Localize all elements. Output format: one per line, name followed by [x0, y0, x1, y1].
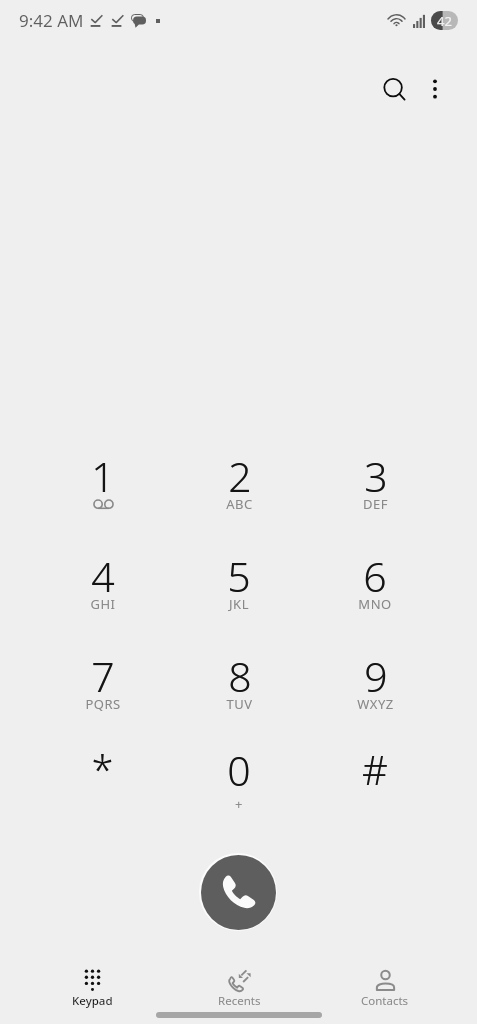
staticText: 4: [91, 548, 115, 595]
staticText: 2: [228, 448, 252, 495]
button[interactable]: More options: [411, 65, 459, 113]
staticText: 7: [91, 648, 115, 695]
staticText: 7: [91, 648, 115, 695]
button[interactable]: 0 plus: [171, 748, 307, 848]
staticText: 2: [228, 448, 252, 495]
button[interactable]: 8 TUV: [171, 648, 307, 748]
staticText: ABC: [226, 495, 253, 513]
staticText: +: [235, 795, 243, 813]
staticText: 5: [227, 548, 251, 595]
staticText: 42: [437, 12, 452, 30]
staticText: JKL: [229, 595, 249, 613]
button[interactable]: star: [34, 748, 171, 848]
staticText: *: [91, 742, 114, 789]
button[interactable]: 2 ABC: [171, 448, 307, 548]
button[interactable]: 5 JKL: [171, 548, 307, 648]
staticText: 0: [227, 742, 251, 789]
button[interactable]: Search: [371, 66, 419, 114]
staticText: GHI: [90, 595, 116, 613]
staticText: *: [91, 742, 114, 789]
button[interactable]: 3 DEF: [307, 448, 443, 548]
staticText: MNO: [358, 595, 392, 613]
staticText: PQRS: [85, 695, 121, 713]
staticText: 8: [228, 648, 252, 695]
staticText: TUV: [226, 695, 253, 713]
staticText: 6: [363, 548, 387, 595]
staticText: 1: [91, 448, 115, 495]
button[interactable]: 4 GHI: [34, 548, 171, 648]
staticText: 9: [364, 648, 388, 695]
button[interactable]: 6 MNO: [307, 548, 443, 648]
button[interactable]: pound: [307, 748, 443, 848]
staticText: DEF: [363, 495, 388, 513]
staticText: 4: [91, 548, 115, 595]
staticText: Recents: [218, 993, 261, 1009]
staticText: 1: [91, 448, 115, 495]
staticText: WXYZ: [357, 695, 394, 713]
button[interactable]: Recents: [166, 964, 312, 1012]
staticText: #: [362, 742, 388, 789]
button[interactable]: 1 voicemail: [34, 448, 171, 548]
staticText: 5: [227, 548, 251, 595]
staticText: #: [362, 742, 388, 789]
button[interactable]: Keypad: [19, 964, 166, 1012]
staticText: 0: [227, 742, 251, 789]
button[interactable]: 9 WXYZ: [307, 648, 443, 748]
staticText: 6: [363, 548, 387, 595]
staticText: 9: [364, 648, 388, 695]
staticText: Keypad: [72, 993, 113, 1009]
button[interactable]: Call: [199, 853, 277, 931]
button[interactable]: Contacts: [312, 964, 458, 1012]
staticText: 3: [364, 448, 388, 495]
staticText: 3: [364, 448, 388, 495]
staticText: 9:42 AM: [19, 9, 84, 32]
staticText: 8: [228, 648, 252, 695]
button[interactable]: 7 PQRS: [34, 648, 171, 748]
staticText: Contacts: [361, 993, 409, 1009]
